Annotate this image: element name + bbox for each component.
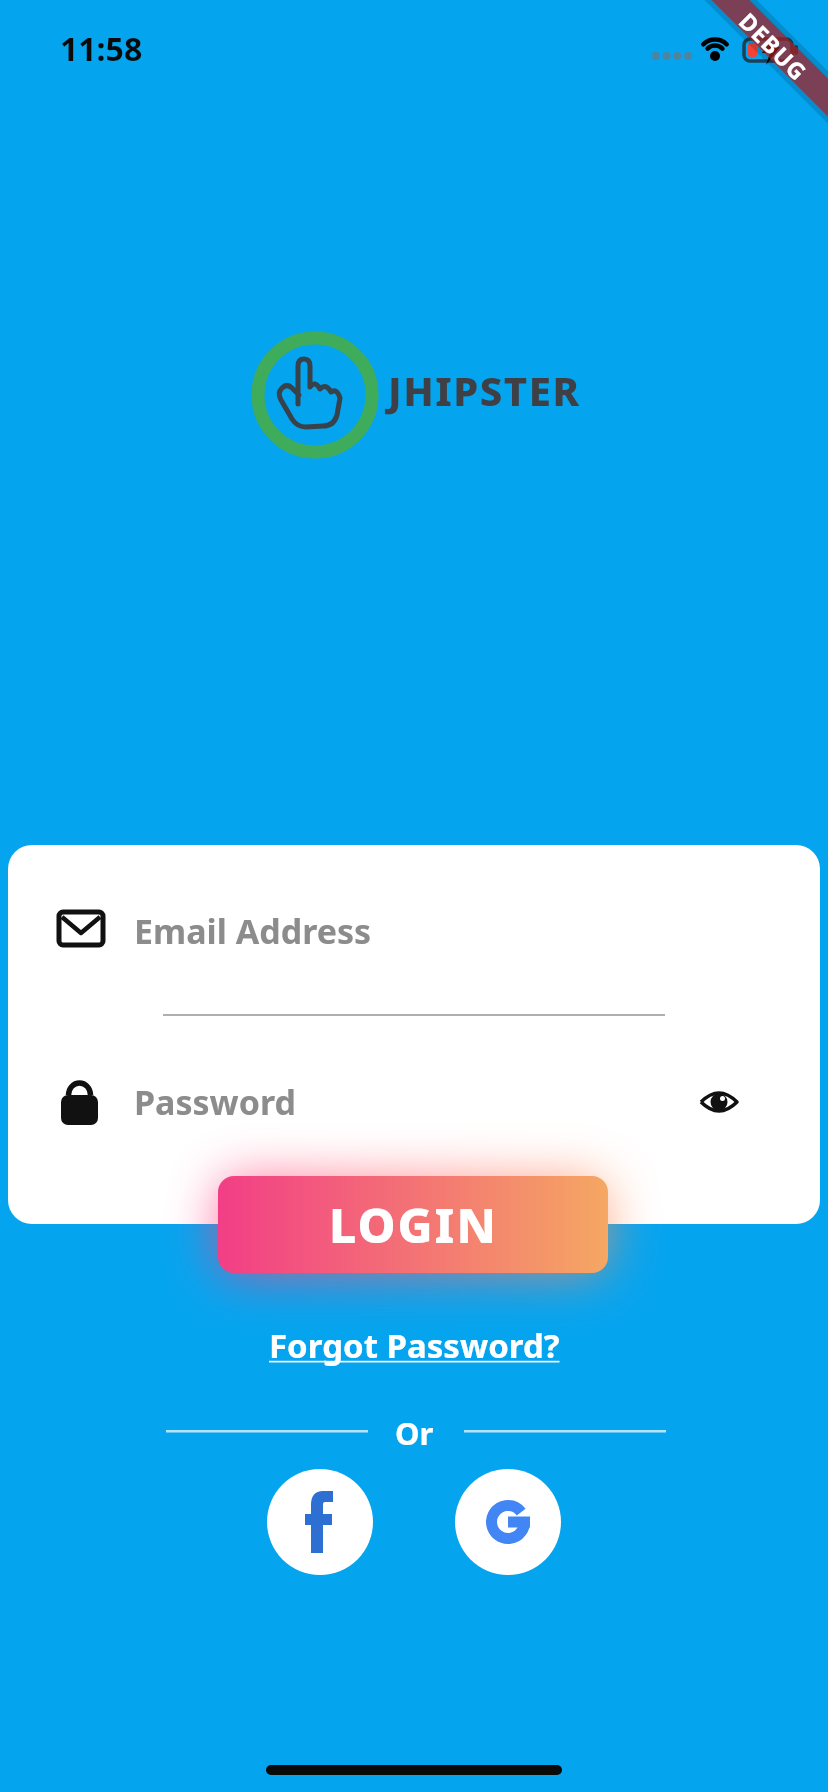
button[interactable]: Forgot Password? (269, 1323, 560, 1368)
staticText: Email Address (134, 908, 372, 954)
button[interactable]: LOGIN (218, 1176, 608, 1273)
button[interactable] (267, 1469, 373, 1575)
staticText: 11:58 (60, 27, 143, 71)
button[interactable] (40, 890, 680, 1020)
staticText: JHIPSTER (388, 363, 581, 417)
staticText: DEBUG (736, 5, 815, 84)
staticText: Password (134, 1079, 296, 1125)
staticText: Or (395, 1412, 434, 1454)
button[interactable] (455, 1469, 561, 1575)
staticText: LOGIN (329, 1192, 498, 1257)
button[interactable] (690, 1080, 750, 1126)
